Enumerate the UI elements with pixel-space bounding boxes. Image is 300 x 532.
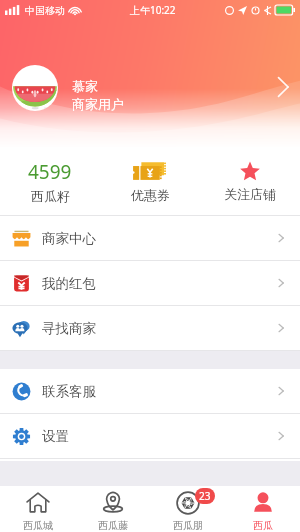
button[interactable]: 设置: [0, 414, 300, 458]
button[interactable]: 慕家: [12, 59, 290, 105]
staticText: 慕家: [72, 78, 98, 94]
staticText: 联系客服: [42, 383, 96, 400]
button[interactable]: 寻找商家: [0, 306, 300, 350]
staticText: 优惠券: [131, 187, 170, 203]
button[interactable]: 联系客服: [0, 369, 300, 413]
staticText: 设置: [42, 428, 69, 445]
staticText: 西瓜城: [23, 519, 53, 532]
staticText: 中国移动: [25, 4, 65, 17]
staticText: 寻找商家: [42, 320, 96, 337]
staticText: 我的红包: [42, 275, 96, 292]
button[interactable]: 关注店铺: [200, 162, 300, 202]
staticText: 西瓜籽: [31, 188, 70, 204]
button[interactable]: 我的红包: [0, 261, 300, 305]
button[interactable]: 商家中心: [0, 216, 300, 260]
button[interactable]: 4599: [0, 159, 100, 204]
button[interactable]: 西瓜: [225, 486, 300, 532]
staticText: 4599: [28, 159, 72, 185]
button[interactable]: 23: [150, 486, 225, 532]
staticText: 商家中心: [42, 230, 96, 247]
other: Profile details: [276, 76, 290, 98]
staticText: 西瓜藤: [98, 519, 128, 532]
button[interactable]: 西瓜城: [0, 486, 75, 532]
button[interactable]: 优惠券: [100, 161, 200, 203]
button[interactable]: 西瓜藤: [75, 486, 150, 532]
staticText: 西瓜: [253, 519, 273, 532]
staticText: 关注店铺: [224, 186, 276, 202]
staticText: 上午10:22: [130, 3, 176, 17]
staticText: 商家用户: [72, 96, 124, 112]
staticText: 西瓜朋: [173, 519, 203, 532]
staticText: 23: [199, 489, 211, 503]
